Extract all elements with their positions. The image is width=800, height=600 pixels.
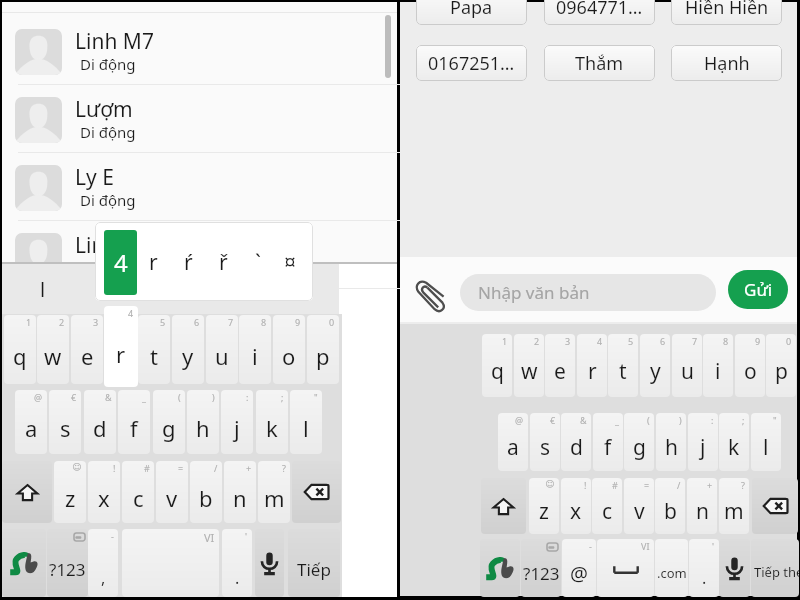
button[interactable]: ' (222, 529, 252, 597)
button[interactable]: 0 (307, 315, 339, 384)
button[interactable]: 2 (37, 315, 69, 384)
button[interactable]: = (624, 478, 654, 534)
button[interactable]: Hiền Hiền (671, 0, 782, 25)
button[interactable]: 4 (104, 306, 138, 387)
button[interactable]: 6 (640, 334, 670, 397)
button[interactable]: @ (15, 390, 47, 454)
button[interactable]: Lin (2, 221, 397, 289)
button[interactable]: ¤ (280, 230, 300, 295)
button[interactable]: ) (656, 413, 686, 471)
button[interactable]: 7 (206, 315, 238, 384)
button[interactable]: Papa (416, 0, 527, 25)
button[interactable]: : (688, 413, 718, 471)
button[interactable]: 1 (482, 334, 512, 397)
button[interactable]: ' (689, 539, 719, 597)
button[interactable]: _ (118, 390, 150, 454)
button[interactable]: 7 (672, 334, 702, 397)
staticText: f (130, 413, 138, 443)
button[interactable]: Thắm (544, 45, 655, 81)
button[interactable]: Tiếp (288, 529, 340, 597)
button[interactable]: ? (258, 461, 290, 523)
button[interactable]: 0964771… (544, 0, 655, 25)
button[interactable]: ?123 (47, 529, 88, 597)
staticText: & (580, 414, 587, 426)
button[interactable]: Voice input (719, 539, 750, 597)
button[interactable]: ! (561, 478, 591, 534)
staticText: € (550, 414, 556, 426)
staticText: Ly E (75, 163, 114, 192)
button[interactable]: ?123 (521, 539, 561, 597)
button[interactable]: 3 (71, 315, 103, 384)
button[interactable]: Swype input (2, 529, 46, 597)
button[interactable]: 0 (766, 334, 796, 397)
button[interactable]: + (224, 461, 256, 523)
staticText: f (604, 433, 612, 462)
button[interactable]: ř (213, 230, 233, 295)
button[interactable]: " (290, 390, 322, 454)
button[interactable]: .com (655, 539, 688, 597)
other: Swype input (485, 557, 515, 579)
button[interactable]: Tiếp theo (751, 539, 799, 597)
button[interactable]: Shift (481, 478, 526, 534)
button[interactable]: ( (153, 390, 185, 454)
button[interactable]: € (49, 390, 81, 454)
button[interactable]: ; (256, 390, 288, 454)
button[interactable]: 4 (577, 334, 607, 397)
button[interactable]: " (751, 413, 781, 471)
button[interactable]: ` (248, 230, 268, 295)
staticText: 0964771… (556, 0, 643, 20)
button[interactable]: Attach file (412, 277, 450, 315)
button[interactable]: 8 (703, 334, 733, 397)
button[interactable]: / (190, 461, 222, 523)
button[interactable]: ☺ (529, 478, 559, 534)
button[interactable]: 9 (273, 315, 305, 384)
button[interactable]: @ (498, 413, 528, 471)
button[interactable]: / (655, 478, 685, 534)
button[interactable]: ( (624, 413, 654, 471)
button[interactable]: Shift (2, 461, 52, 523)
button[interactable]: ŕ (178, 230, 198, 295)
button[interactable]: ? (719, 478, 749, 534)
button[interactable]: Ly E (2, 153, 397, 221)
button[interactable]: Gửi (728, 270, 788, 309)
button[interactable]: Linh M7 (2, 17, 397, 85)
button[interactable]: & (561, 413, 591, 471)
button[interactable]: 0167251… (416, 45, 527, 81)
button[interactable]: 1 (4, 315, 36, 384)
button[interactable]: 8 (239, 315, 271, 384)
button[interactable]: ! (88, 461, 120, 523)
button[interactable]: Backspace (752, 478, 798, 534)
button[interactable]: _ (593, 413, 623, 471)
button[interactable]: 5 (138, 315, 170, 384)
button[interactable]: Voice input (255, 529, 284, 597)
button[interactable]: ‐ (88, 529, 118, 597)
staticText: m (264, 483, 285, 513)
button[interactable]: & (84, 390, 116, 454)
button[interactable]: 4 (104, 230, 137, 295)
button[interactable]: Hạnh (671, 45, 782, 81)
button[interactable]: 2 (514, 334, 544, 397)
button[interactable]: Nhập văn bản (460, 274, 716, 311)
button[interactable]: 5 (608, 334, 638, 397)
button[interactable]: ☺ (54, 461, 86, 523)
button[interactable]: ) (187, 390, 219, 454)
button[interactable]: 6 (172, 315, 204, 384)
button[interactable]: VI (122, 529, 219, 597)
button[interactable]: € (530, 413, 560, 471)
button[interactable]: ‐ (562, 539, 596, 597)
button[interactable]: Lượm (2, 85, 397, 153)
staticText: 3 (93, 316, 99, 328)
button[interactable]: VI (597, 539, 654, 597)
button[interactable]: : (221, 390, 253, 454)
button[interactable]: # (122, 461, 154, 523)
button[interactable]: l (32, 264, 54, 315)
button[interactable]: 9 (735, 334, 765, 397)
button[interactable]: # (592, 478, 622, 534)
button[interactable]: 3 (545, 334, 575, 397)
button[interactable]: r (143, 230, 163, 295)
button[interactable]: ; (719, 413, 749, 471)
button[interactable]: Backspace (292, 461, 341, 523)
button[interactable]: + (687, 478, 717, 534)
button[interactable]: = (156, 461, 188, 523)
button[interactable]: Swype input (480, 539, 520, 597)
